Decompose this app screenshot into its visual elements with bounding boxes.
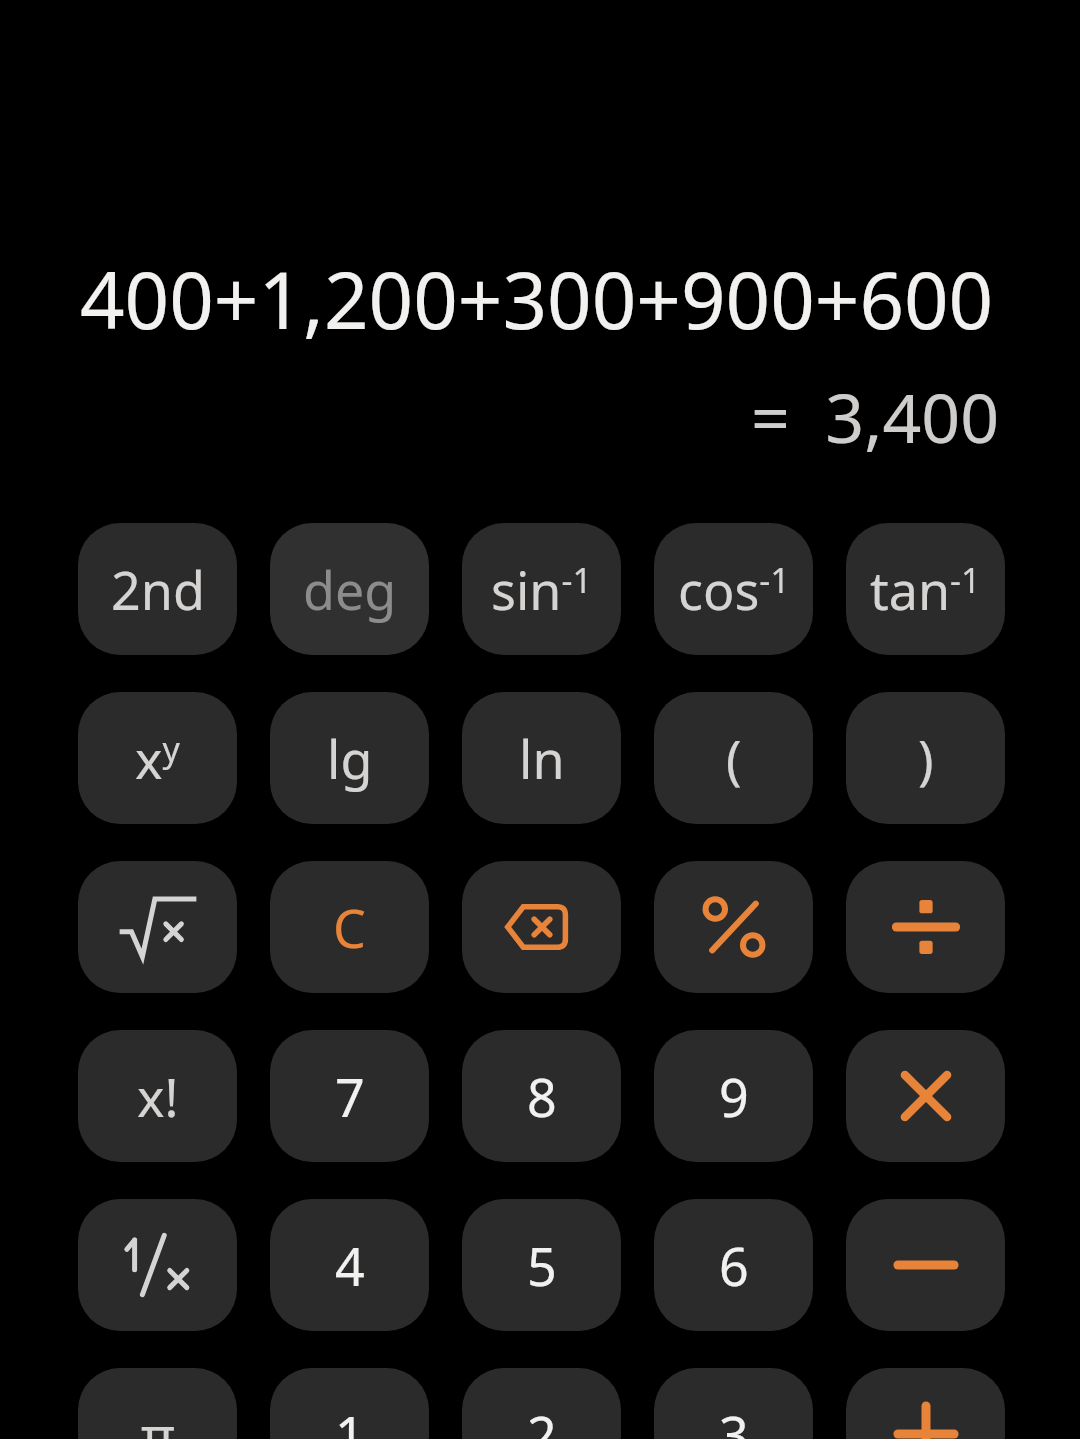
- button[interactable]: 6: [654, 1199, 813, 1331]
- button[interactable]: 5: [462, 1199, 621, 1331]
- button[interactable]: 2nd: [78, 523, 237, 655]
- staticText: x!: [137, 1061, 179, 1132]
- button[interactable]: Multiply: [846, 1030, 1005, 1162]
- button[interactable]: ): [846, 692, 1005, 824]
- button[interactable]: 8: [462, 1030, 621, 1162]
- staticText: π: [141, 1399, 175, 1439]
- staticText: ln: [519, 723, 565, 794]
- button[interactable]: 2: [462, 1368, 621, 1439]
- staticText: 400+1,200+300+900+600: [80, 246, 994, 352]
- button[interactable]: Minus: [846, 1199, 1005, 1331]
- staticText: 3: [719, 1399, 749, 1439]
- staticText: 2nd: [111, 554, 205, 625]
- staticText: 6: [719, 1230, 749, 1301]
- button[interactable]: Square root: [78, 861, 237, 993]
- staticText: sin-1: [491, 554, 592, 625]
- staticText: tan-1: [870, 554, 981, 625]
- button[interactable]: Backspace: [462, 861, 621, 993]
- staticText: 8: [527, 1061, 557, 1132]
- staticText: = 3,400: [751, 370, 1000, 463]
- button[interactable]: 3: [654, 1368, 813, 1439]
- staticText: xy: [135, 723, 180, 794]
- staticText: cos-1: [678, 554, 790, 625]
- button[interactable]: 7: [270, 1030, 429, 1162]
- staticText: C: [333, 892, 366, 963]
- button[interactable]: π: [78, 1368, 237, 1439]
- staticText: 2: [527, 1399, 557, 1439]
- staticText: (: [726, 723, 742, 794]
- button[interactable]: 4: [270, 1199, 429, 1331]
- button[interactable]: Plus: [846, 1368, 1005, 1439]
- button[interactable]: x!: [78, 1030, 237, 1162]
- staticText: 5: [527, 1230, 557, 1301]
- button[interactable]: lg: [270, 692, 429, 824]
- staticText: lg: [327, 723, 373, 794]
- button[interactable]: C: [270, 861, 429, 993]
- staticText: 7: [335, 1061, 365, 1132]
- staticText: 9: [719, 1061, 749, 1132]
- button[interactable]: deg: [270, 523, 429, 655]
- button[interactable]: Divide: [846, 861, 1005, 993]
- button[interactable]: (: [654, 692, 813, 824]
- button[interactable]: Percent: [654, 861, 813, 993]
- button[interactable]: cos-1: [654, 523, 813, 655]
- button[interactable]: 9: [654, 1030, 813, 1162]
- staticText: ): [918, 723, 934, 794]
- button[interactable]: tan-1: [846, 523, 1005, 655]
- staticText: deg: [303, 554, 397, 625]
- button[interactable]: sin-1: [462, 523, 621, 655]
- button[interactable]: 1: [270, 1368, 429, 1439]
- button[interactable]: xy: [78, 692, 237, 824]
- button[interactable]: Reciprocal: [78, 1199, 237, 1331]
- button[interactable]: ln: [462, 692, 621, 824]
- staticText: 4: [335, 1230, 365, 1301]
- staticText: 1: [335, 1399, 365, 1439]
